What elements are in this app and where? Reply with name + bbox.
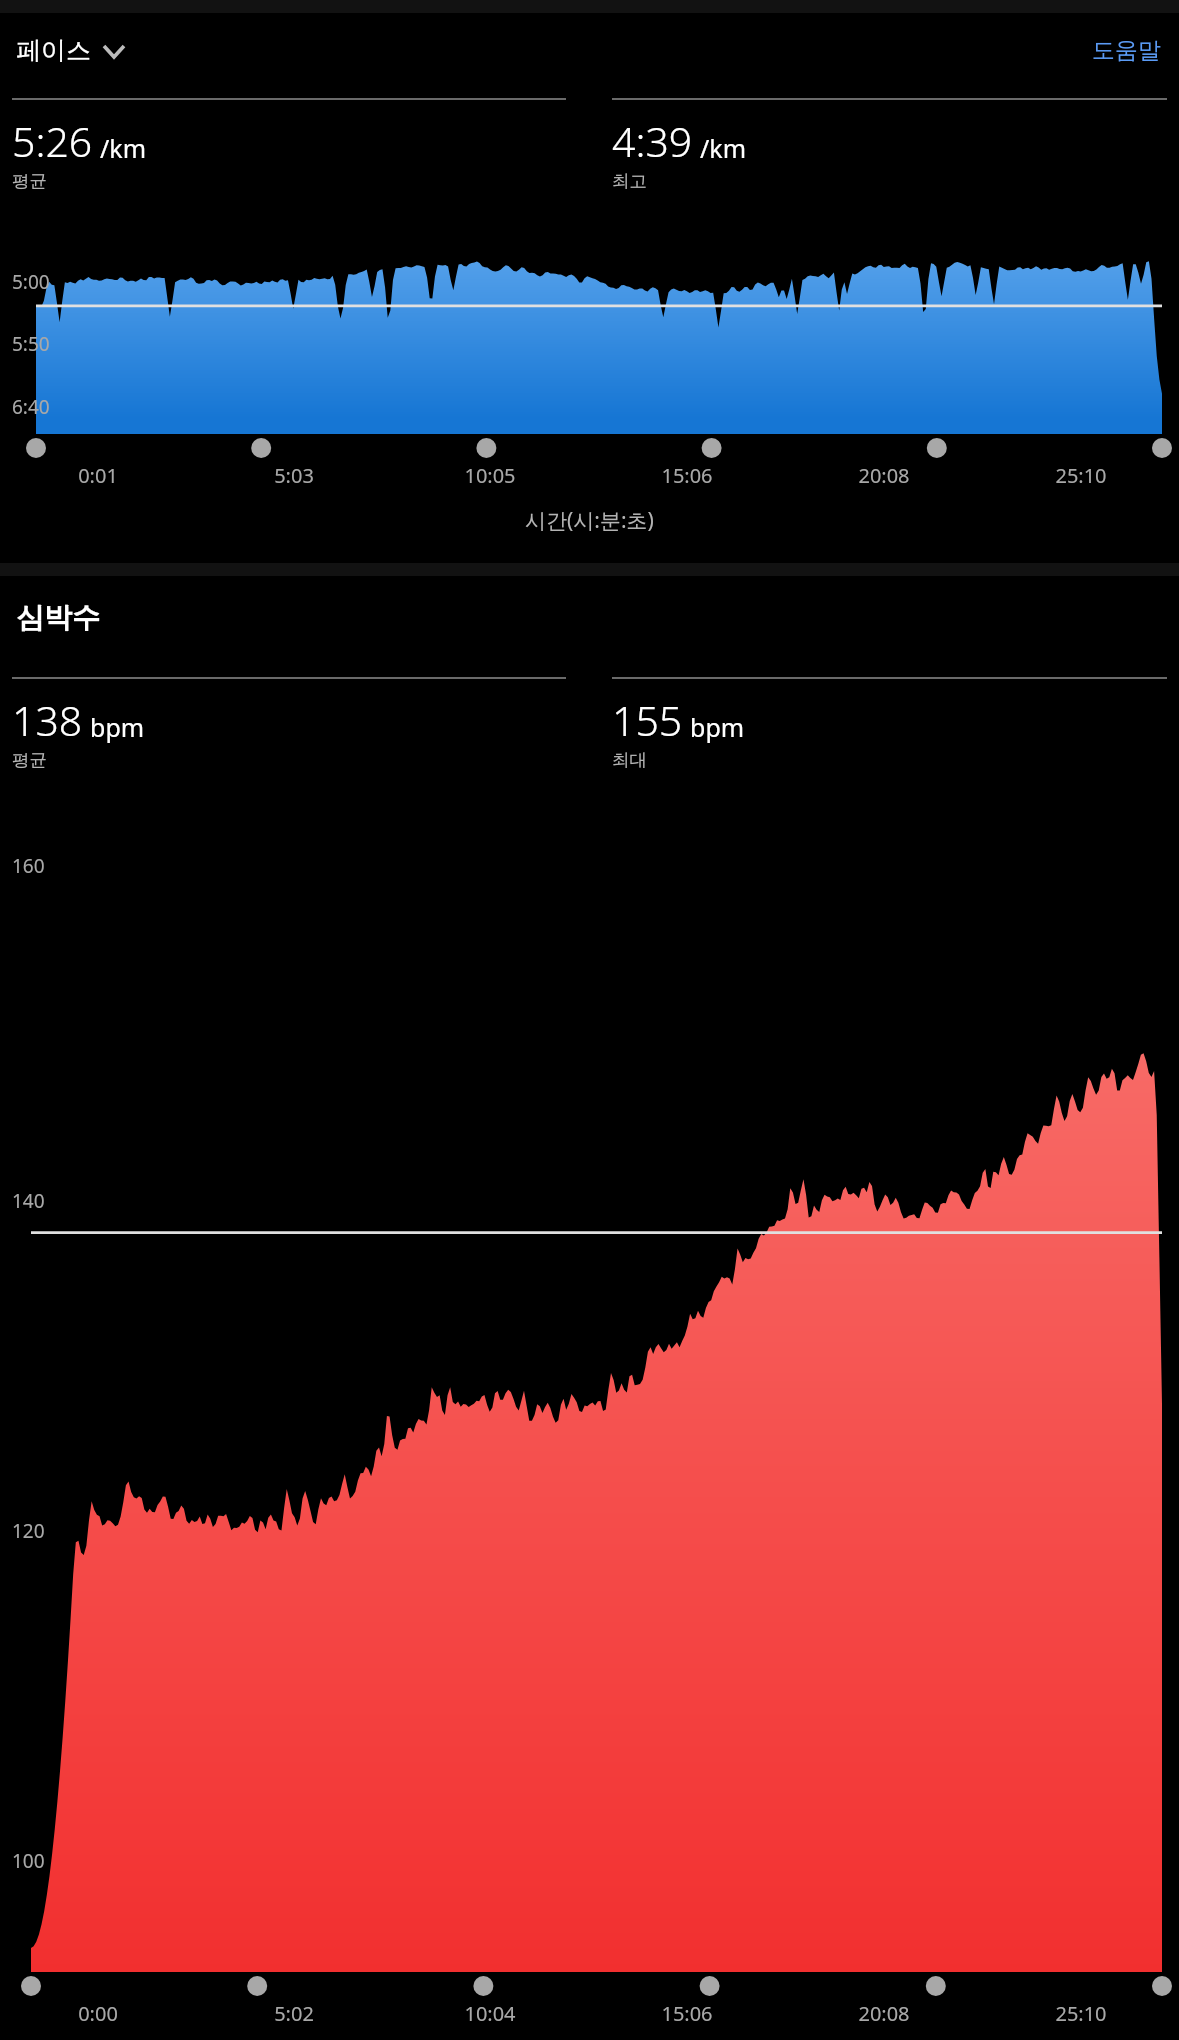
staticText: 20:08	[858, 2000, 910, 2027]
staticText: 10:05	[464, 462, 516, 489]
button[interactable]: 페이스	[10, 29, 132, 72]
staticText: 10:04	[464, 2000, 516, 2027]
staticText: 138	[12, 692, 83, 748]
staticText: 140	[12, 1188, 45, 1214]
staticText: 15:06	[661, 462, 713, 489]
staticText: 5:00	[12, 269, 50, 295]
staticText: 25:10	[1055, 462, 1107, 489]
staticText: 0:01	[78, 462, 118, 489]
staticText: 5:03	[274, 462, 314, 489]
staticText: 155	[612, 692, 683, 748]
staticText: 4:39	[612, 113, 693, 169]
staticText: 최대	[612, 749, 647, 771]
staticText: bpm	[690, 710, 745, 744]
staticText: 6:40	[12, 394, 50, 420]
staticText: 평균	[12, 170, 47, 192]
staticText: /km	[700, 131, 747, 165]
staticText: 최고	[612, 170, 647, 192]
staticText: 5:50	[12, 331, 50, 357]
staticText: 시간(시:분:초)	[525, 506, 654, 535]
staticText: 15:06	[661, 2000, 713, 2027]
staticText: 평균	[12, 749, 47, 771]
staticText: 120	[12, 1518, 45, 1544]
button[interactable]: 도움말	[1084, 30, 1169, 71]
staticText: 페이스	[16, 35, 91, 66]
staticText: 5:02	[274, 2000, 314, 2027]
staticText: 5:26	[12, 113, 93, 169]
staticText: 160	[12, 853, 45, 879]
staticText: 20:08	[858, 462, 910, 489]
staticText: /km	[100, 131, 147, 165]
staticText: 0:00	[78, 2000, 118, 2027]
staticText: bpm	[90, 710, 145, 744]
staticText: 25:10	[1055, 2000, 1107, 2027]
staticText: 100	[12, 1848, 45, 1874]
staticText: 도움말	[1092, 36, 1161, 65]
staticText: 심박수	[16, 600, 100, 635]
